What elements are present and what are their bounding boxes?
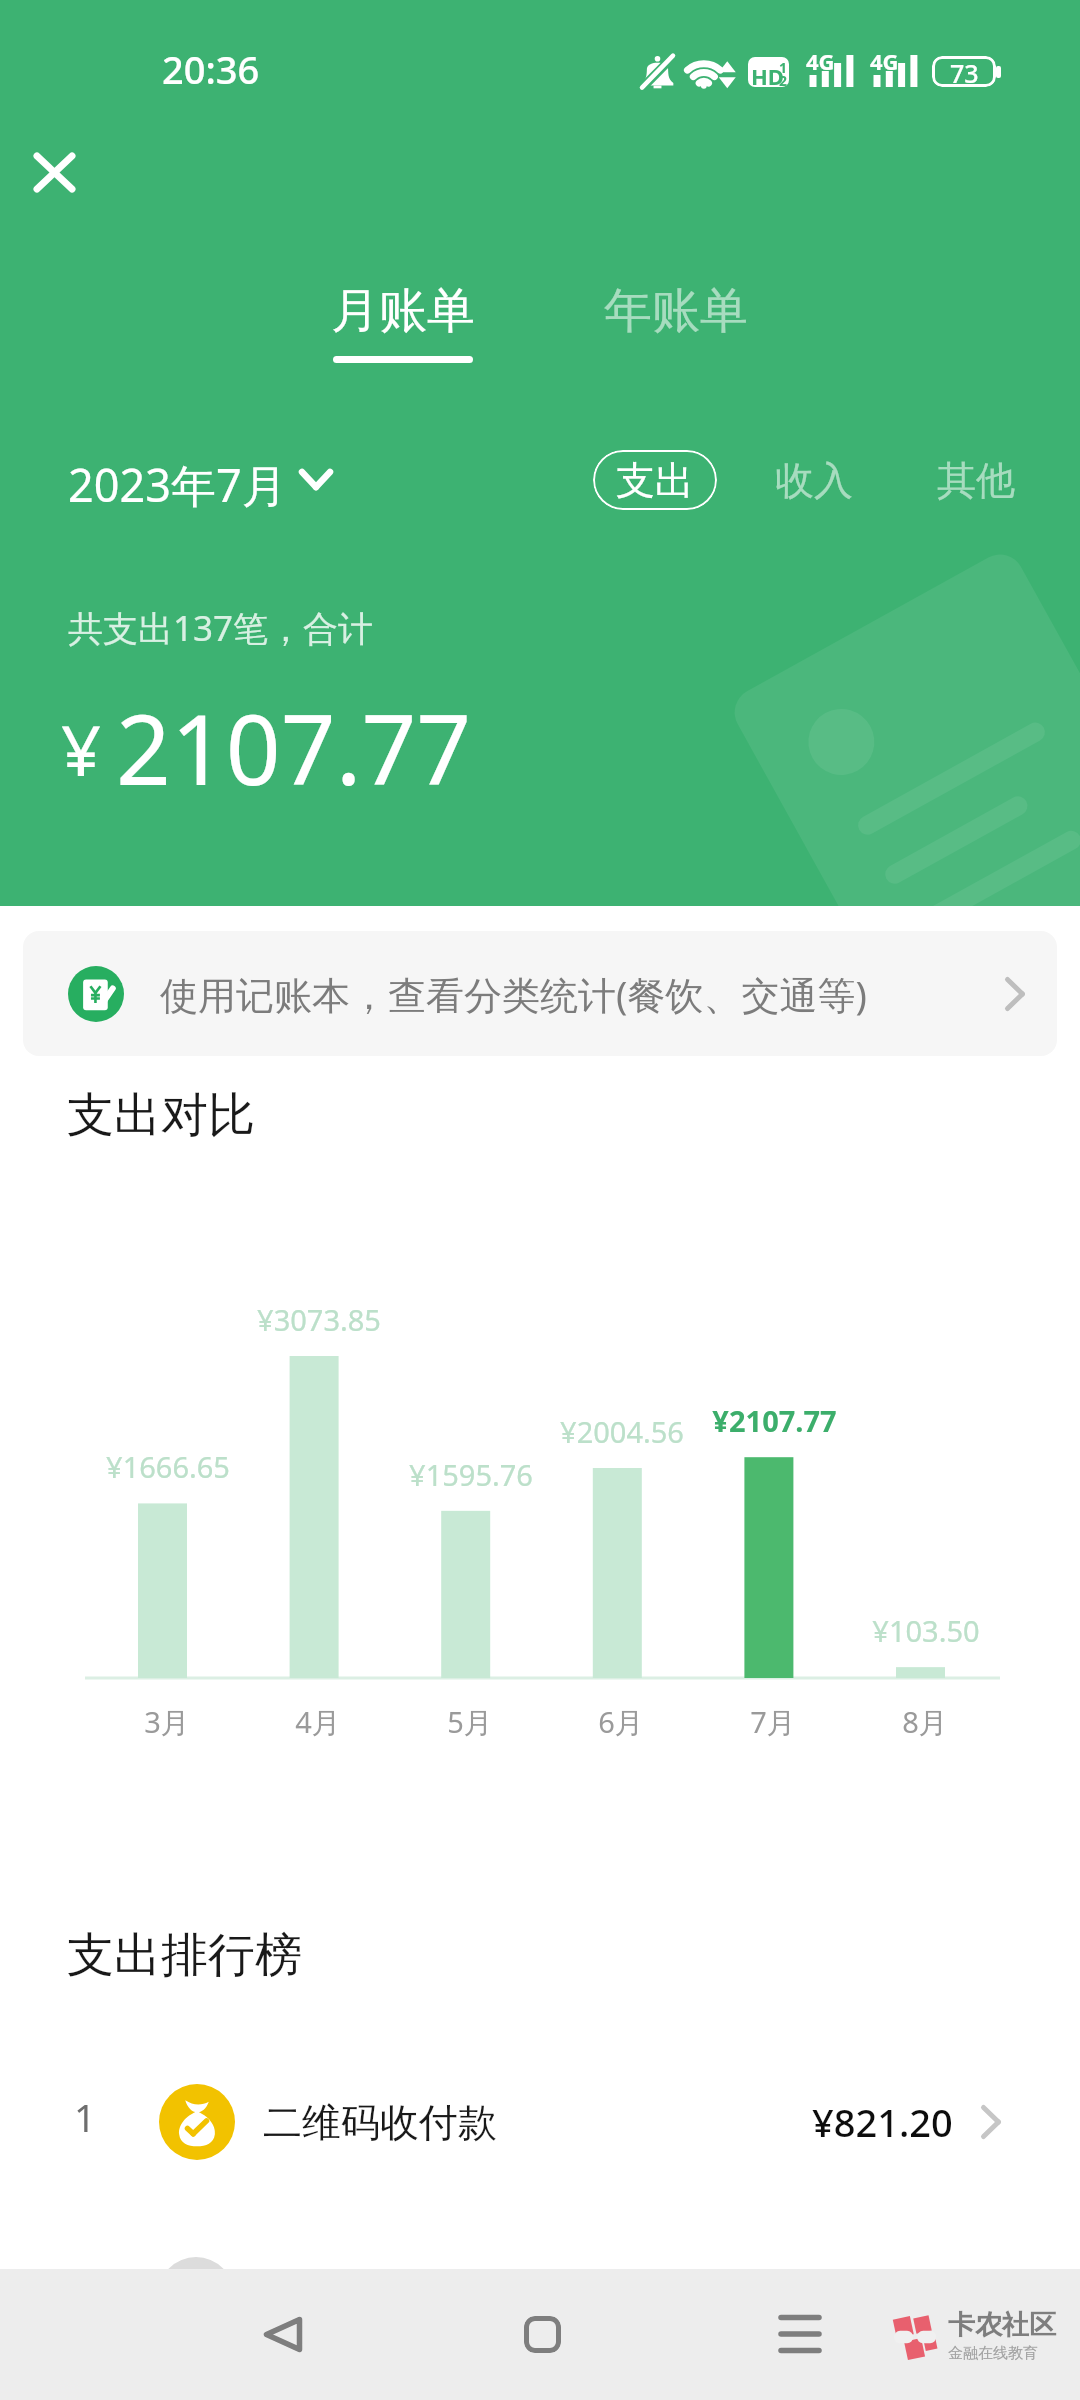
staticText: HD bbox=[751, 61, 784, 87]
staticText: 支出排行榜 bbox=[67, 1926, 302, 1985]
staticText: 共支出137笔，合计 bbox=[68, 604, 374, 652]
staticText: ¥2004.56 bbox=[560, 1412, 684, 1451]
staticText: 金融在线教育 bbox=[948, 2344, 1038, 2363]
staticText: 使用记账本，查看分类统计(餐饮、交通等) bbox=[160, 968, 867, 1020]
staticText: ¥2107.77 bbox=[712, 1401, 837, 1440]
staticText: 3月 bbox=[144, 1702, 190, 1742]
staticText: 2 bbox=[779, 71, 788, 87]
staticText: 收入 bbox=[775, 456, 853, 505]
staticText: ¥821.20 bbox=[812, 2096, 953, 2148]
staticText: 6月 bbox=[598, 1702, 644, 1742]
staticText: 7月 bbox=[750, 1702, 796, 1742]
staticText: 年账单 bbox=[604, 281, 748, 341]
staticText: 支出 bbox=[616, 456, 694, 505]
staticText: 其他 bbox=[937, 456, 1015, 505]
button[interactable]: 1 bbox=[0, 2060, 1080, 2184]
staticText: 8月 bbox=[902, 1702, 948, 1742]
button[interactable]: 收入 bbox=[769, 450, 859, 510]
staticText: 20:36 bbox=[162, 43, 260, 95]
staticText: 支出对比 bbox=[67, 1086, 255, 1145]
staticText: 1 bbox=[779, 58, 788, 77]
button[interactable]: 年账单 bbox=[576, 271, 776, 373]
staticText: 1 bbox=[74, 2091, 96, 2143]
staticText: 4G bbox=[806, 46, 835, 76]
staticText: 4月 bbox=[295, 1702, 341, 1742]
button[interactable]: Home bbox=[497, 2289, 587, 2379]
button[interactable]: Back bbox=[238, 2289, 328, 2379]
staticText: 2023年7月 bbox=[68, 454, 287, 515]
staticText: 5月 bbox=[447, 1702, 493, 1742]
staticText: 2107.77 bbox=[116, 682, 472, 813]
staticText: 月账单 bbox=[331, 281, 475, 341]
staticText: 73 bbox=[950, 56, 979, 87]
staticText: ¥1595.76 bbox=[409, 1455, 533, 1494]
button[interactable]: Close bbox=[9, 127, 99, 217]
button[interactable]: 支出 bbox=[593, 450, 717, 510]
staticText: ¥3073.85 bbox=[257, 1300, 381, 1339]
button[interactable]: 其他 bbox=[931, 450, 1021, 510]
button[interactable]: 月账单 bbox=[303, 271, 503, 373]
button[interactable]: 使用记账本，查看分类统计(餐饮、交通等) bbox=[23, 931, 1057, 1056]
staticText: 4G bbox=[870, 46, 899, 76]
staticText: ¥103.50 bbox=[872, 1611, 980, 1650]
staticText: ¥ bbox=[61, 701, 102, 796]
staticText: ¥1666.65 bbox=[106, 1447, 230, 1486]
staticText: 卡农社区 bbox=[948, 2308, 1056, 2342]
button[interactable]: 2023年7月 bbox=[60, 448, 341, 521]
staticText: 二维码收付款 bbox=[263, 2098, 497, 2147]
button[interactable]: Recent apps bbox=[755, 2289, 845, 2379]
